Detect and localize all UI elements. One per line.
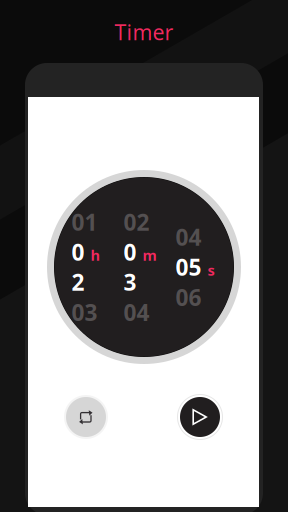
button[interactable]: Start timer xyxy=(177,394,223,440)
staticText: 06 xyxy=(175,282,201,312)
staticText: 01 xyxy=(71,207,97,237)
staticText: Timer xyxy=(114,18,173,46)
staticText: h xyxy=(90,245,100,265)
staticText: s xyxy=(207,260,214,280)
staticText: 03 xyxy=(123,237,136,297)
button[interactable]: Repeat xyxy=(64,395,108,439)
staticText: 03 xyxy=(71,297,97,327)
staticText: m xyxy=(142,245,156,265)
staticText: 02 xyxy=(71,237,84,297)
staticText: 02 xyxy=(123,207,149,237)
staticText: 04 xyxy=(175,222,201,252)
staticText: 05 xyxy=(175,252,201,282)
staticText: 04 xyxy=(123,297,149,327)
